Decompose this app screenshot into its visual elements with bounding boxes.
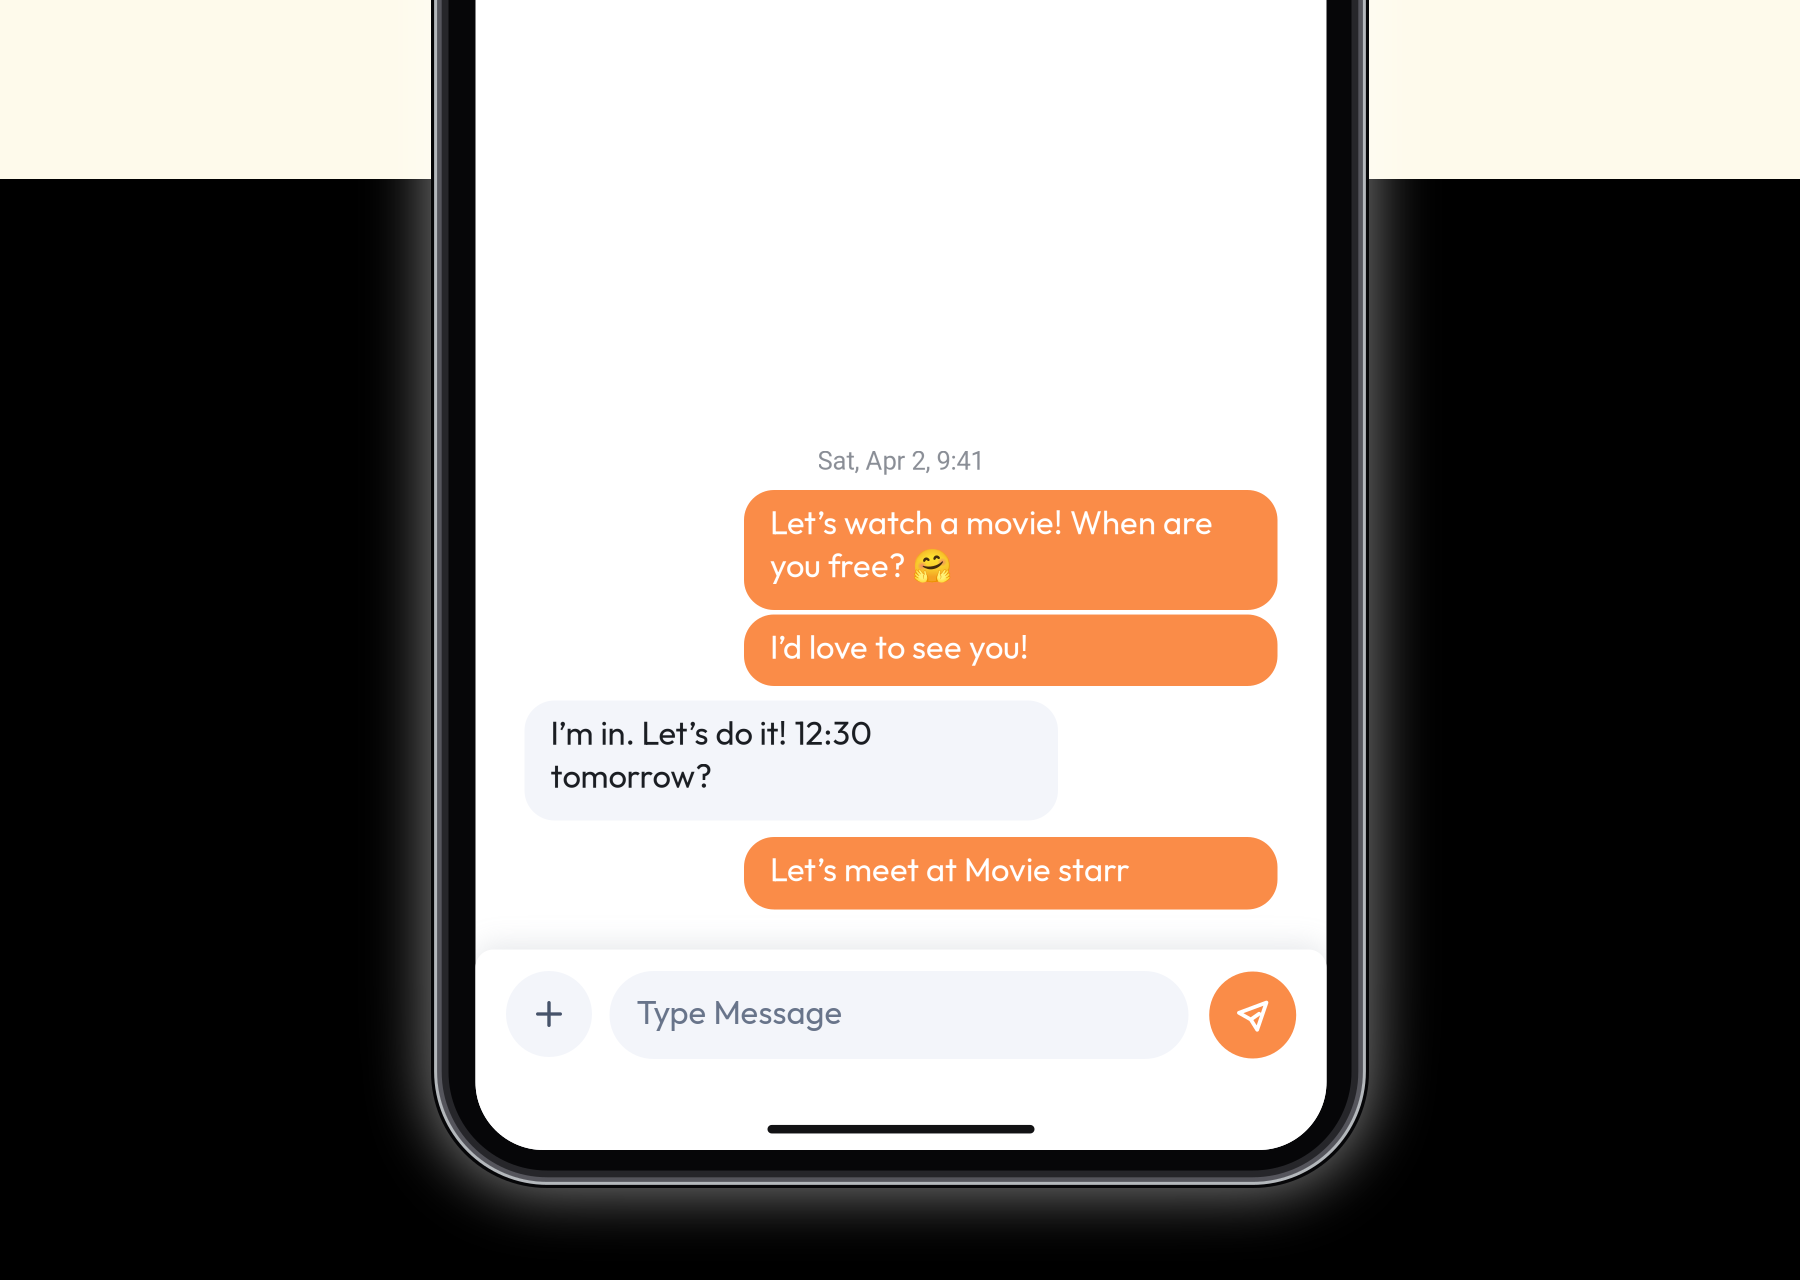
button[interactable]: Add attachment	[506, 971, 592, 1057]
button[interactable]: Let’s watch a movie! When are you free? …	[744, 490, 1277, 610]
staticText: Let’s meet at Movie starr	[770, 848, 1130, 890]
button[interactable]: Let’s meet at Movie starr	[744, 837, 1277, 909]
staticText: I’m in. Let’s do it! 12:30 tomorrow?	[550, 712, 871, 796]
button[interactable]: Send	[1209, 971, 1296, 1058]
staticText: I’d love to see you!	[770, 626, 1029, 667]
staticText: Sat, Apr 2, 9:41	[817, 446, 984, 476]
button[interactable]: Type Message	[609, 971, 1188, 1059]
staticText: Let’s watch a movie! When are you free? …	[770, 501, 1213, 586]
button[interactable]: I’d love to see you!	[744, 614, 1277, 686]
button[interactable]: I’m in. Let’s do it! 12:30 tomorrow?	[524, 700, 1058, 820]
staticText: Type Message	[636, 991, 842, 1033]
